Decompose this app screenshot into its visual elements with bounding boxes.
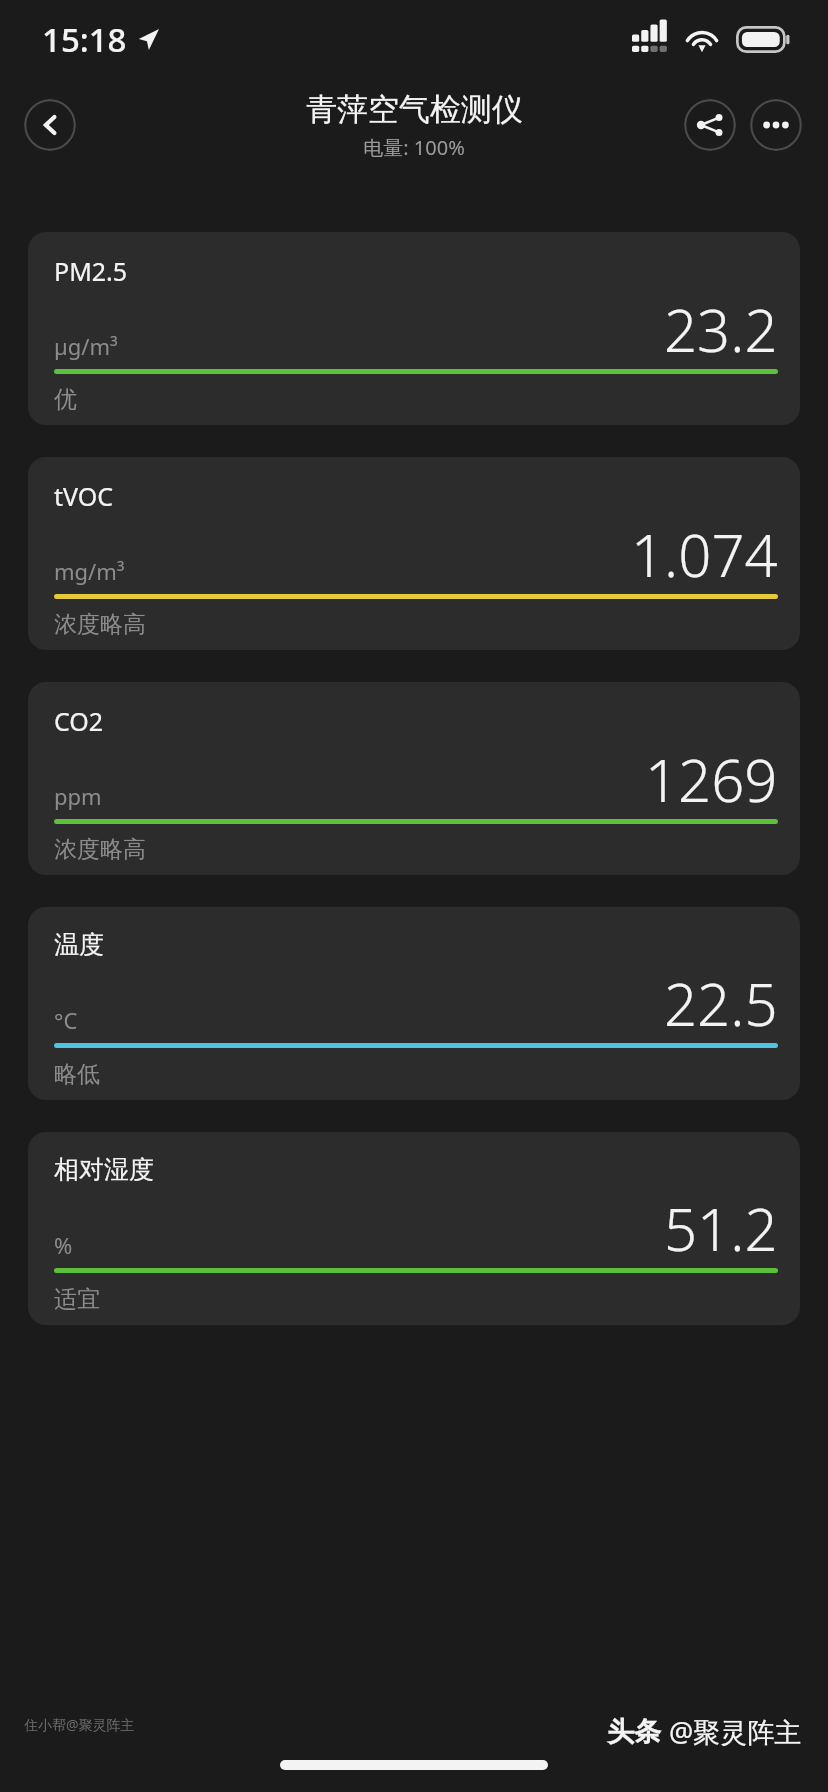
staticText: 头条: [607, 1715, 661, 1749]
staticText: 温度: [54, 929, 104, 960]
staticText: 相对湿度: [54, 1154, 154, 1185]
staticText: 22.5: [664, 964, 778, 1043]
button[interactable]: CO2: [28, 682, 800, 875]
staticText: 23.2: [664, 290, 778, 369]
staticText: 51.2: [664, 1189, 778, 1268]
staticText: 适宜: [54, 1285, 100, 1314]
staticText: tVOC: [54, 479, 114, 513]
button[interactable]: More options: [750, 99, 802, 151]
button[interactable]: PM2.5: [28, 232, 800, 425]
staticText: 1269: [645, 740, 778, 819]
button[interactable]: tVOC: [28, 457, 800, 650]
staticText: 浓度略高: [54, 835, 146, 864]
staticText: °C: [54, 1005, 78, 1035]
button[interactable]: 相对湿度: [28, 1132, 800, 1325]
staticText: 浓度略高: [54, 610, 146, 639]
staticText: 住小帮@聚灵阵主: [24, 1715, 135, 1734]
staticText: @聚灵阵主: [669, 1713, 802, 1750]
staticText: 略低: [54, 1060, 100, 1089]
staticText: %: [54, 1230, 73, 1260]
button[interactable]: 温度: [28, 907, 800, 1100]
staticText: 1.074: [631, 515, 778, 594]
staticText: PM2.5: [54, 254, 128, 288]
button[interactable]: Share: [684, 99, 736, 151]
button[interactable]: Back: [24, 99, 76, 151]
staticText: ppm: [54, 781, 102, 811]
staticText: mg/m³: [54, 556, 125, 586]
staticText: 优: [54, 385, 77, 414]
staticText: µg/m³: [54, 331, 118, 361]
staticText: 15:18: [42, 17, 127, 62]
staticText: CO2: [54, 704, 104, 738]
staticText: 青萍空气检测仪: [306, 90, 523, 129]
staticText: 电量: 100%: [363, 134, 465, 161]
